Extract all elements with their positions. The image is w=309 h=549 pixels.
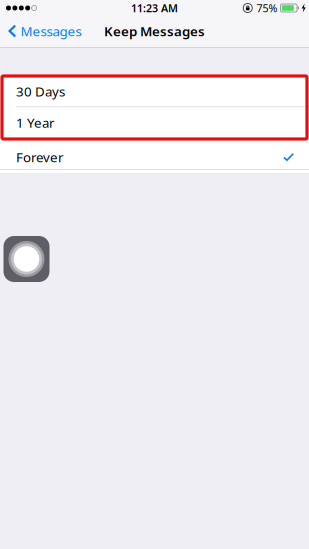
button[interactable]: Messages (0, 20, 87, 47)
staticText: Forever (16, 148, 64, 166)
staticText: Messages (20, 22, 81, 40)
staticText: 75% (256, 1, 277, 15)
button[interactable]: 1 Year (0, 107, 309, 138)
staticText: 30 Days (16, 82, 65, 100)
button[interactable]: AssistiveTouch (3, 236, 49, 282)
staticText: Keep Messages (104, 22, 205, 40)
staticText: 1 Year (16, 114, 55, 131)
button[interactable]: 30 Days (0, 76, 309, 106)
button[interactable]: Forever (0, 139, 309, 169)
staticText: 11:23 AM (131, 1, 178, 15)
